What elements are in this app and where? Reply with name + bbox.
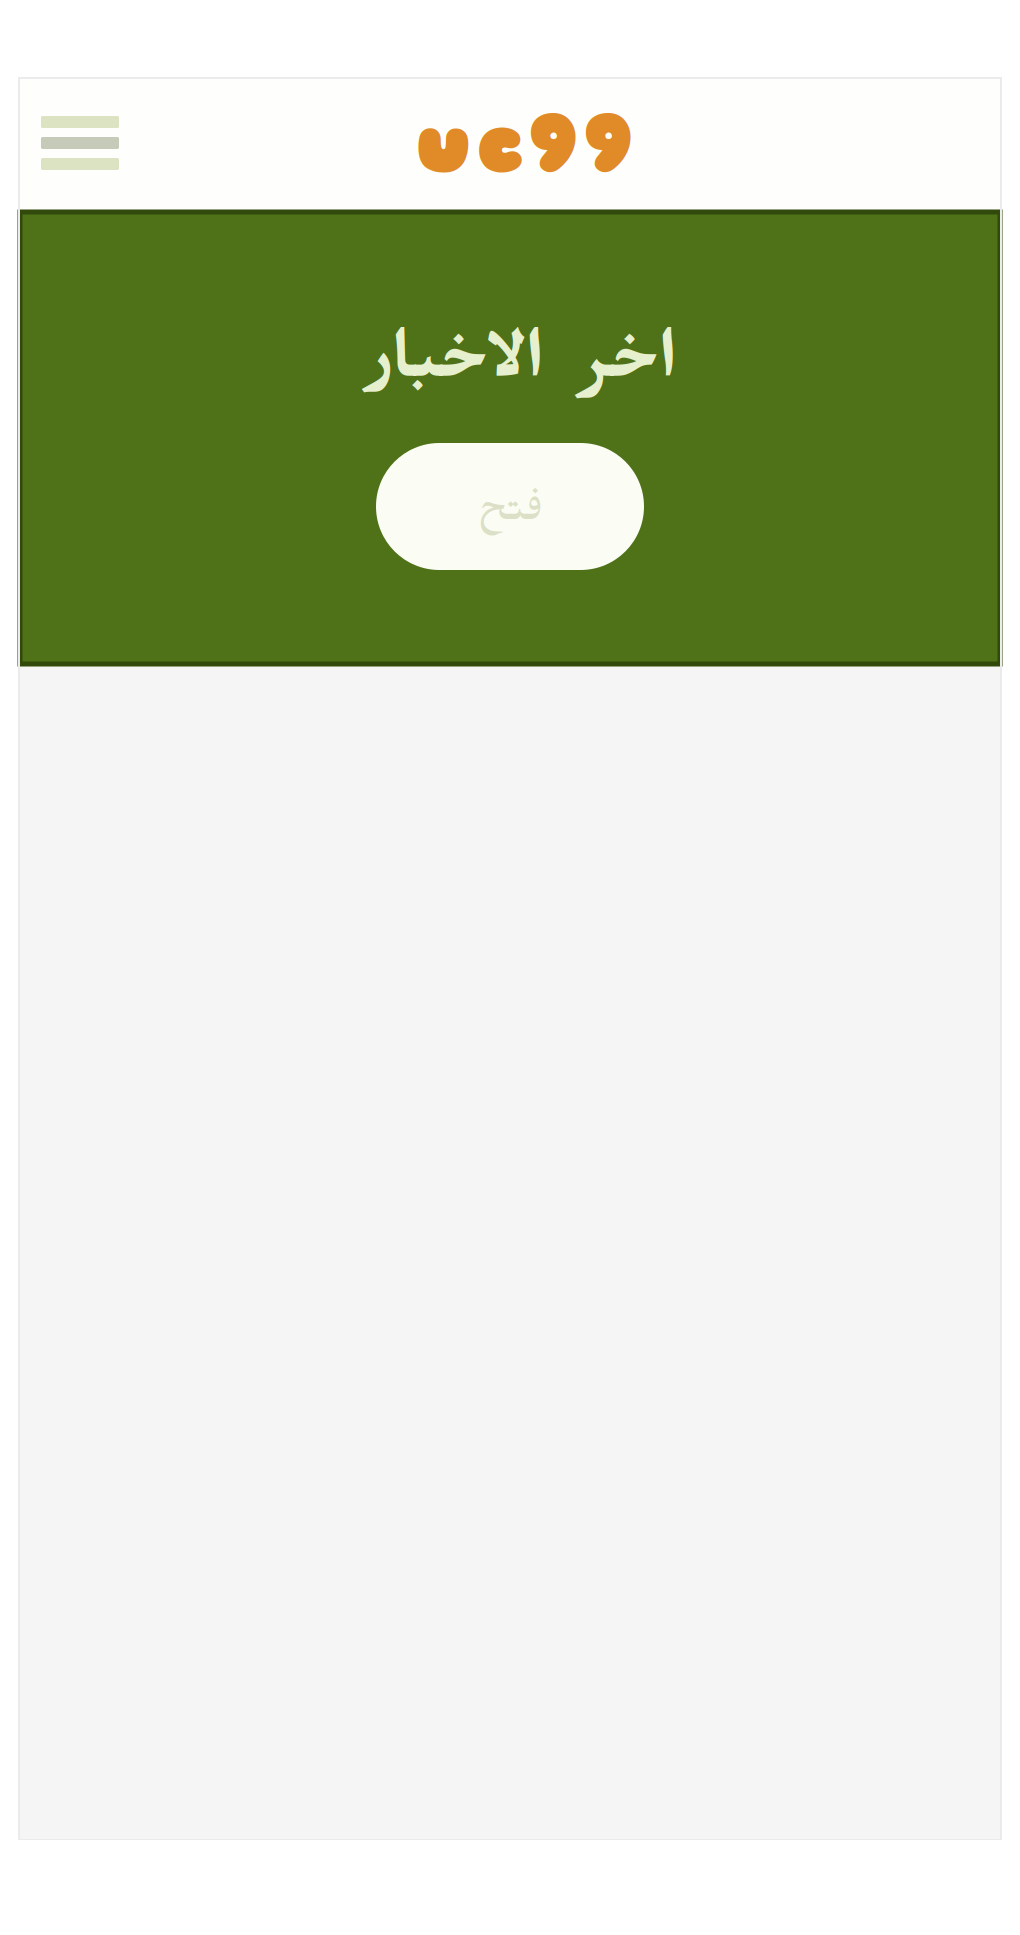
button[interactable]: uc99 — [387, 92, 633, 197]
staticText: فتح — [476, 490, 543, 543]
button[interactable]: Menu — [20, 78, 141, 212]
staticText: uc99 — [415, 92, 633, 195]
button[interactable]: فتح — [376, 443, 644, 570]
staticText: اخر الاخبار — [366, 332, 676, 412]
